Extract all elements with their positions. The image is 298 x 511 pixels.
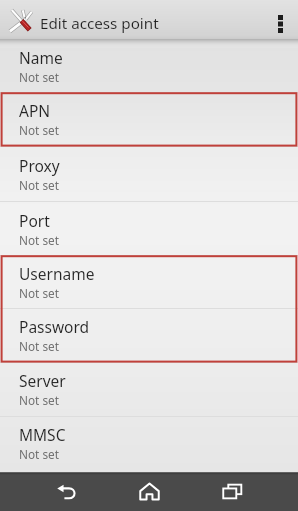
button[interactable]: APN <box>0 92 298 146</box>
staticText: Not set <box>19 392 59 408</box>
button[interactable]: Back <box>25 472 108 511</box>
button[interactable]: Home <box>108 472 191 511</box>
staticText: Name <box>19 47 63 68</box>
staticText: Server <box>19 370 66 391</box>
button[interactable]: Server <box>0 362 298 416</box>
button[interactable]: MMSC <box>0 416 298 470</box>
staticText: APN <box>19 100 51 121</box>
button[interactable]: Proxy <box>0 146 298 201</box>
button[interactable]: Port <box>0 201 298 256</box>
staticText: Proxy <box>19 155 60 176</box>
staticText: Username <box>19 263 95 284</box>
staticText: Password <box>19 316 90 337</box>
button[interactable]: Username <box>0 255 298 308</box>
staticText: Not set <box>19 232 59 248</box>
button[interactable]: Name <box>0 39 298 93</box>
staticText: Port <box>19 210 50 231</box>
staticText: Not set <box>19 446 59 462</box>
staticText: Not set <box>19 338 59 354</box>
staticText: Not set <box>19 122 59 138</box>
staticText: Edit access point <box>40 13 298 34</box>
staticText: MMSC <box>19 424 66 445</box>
staticText: Not set <box>19 177 59 193</box>
button[interactable]: Access point settings <box>0 0 40 38</box>
staticText: Not set <box>19 69 59 85</box>
button[interactable]: Password <box>0 308 298 361</box>
button[interactable]: More options <box>262 5 298 43</box>
button[interactable]: Recent apps <box>191 472 274 511</box>
staticText: Not set <box>19 285 59 301</box>
